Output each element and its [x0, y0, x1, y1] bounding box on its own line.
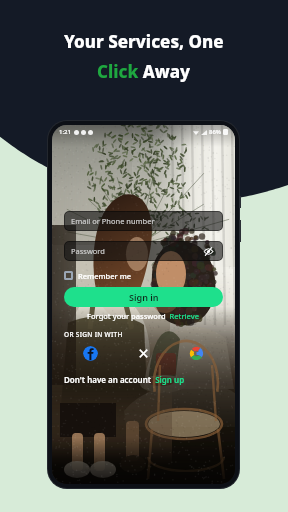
staticText: Password [71, 246, 105, 256]
button[interactable]: Sign in with X [136, 346, 151, 361]
staticText: OR SIGN IN WITH [64, 330, 123, 339]
button[interactable]: Email or Phone number [64, 211, 223, 231]
staticText: Your Services, One [64, 30, 224, 53]
staticText: Email or Phone number [71, 216, 155, 226]
button[interactable]: Forgot your password Retrieve [87, 311, 200, 321]
button[interactable]: Password [64, 241, 223, 261]
staticText: Remember me [78, 271, 132, 281]
staticText: 86% [209, 128, 221, 136]
staticText: Click Away [97, 60, 191, 83]
button[interactable]: Sign in [64, 287, 223, 307]
staticText: 1:21 [59, 128, 71, 136]
staticText: Sign in [129, 291, 159, 303]
button[interactable]: Remember me [64, 270, 132, 281]
button[interactable]: Sign in with Facebook [83, 346, 98, 361]
button[interactable]: Don't have an account Sign up [64, 374, 185, 385]
button[interactable]: Sign in with Google [189, 346, 204, 361]
